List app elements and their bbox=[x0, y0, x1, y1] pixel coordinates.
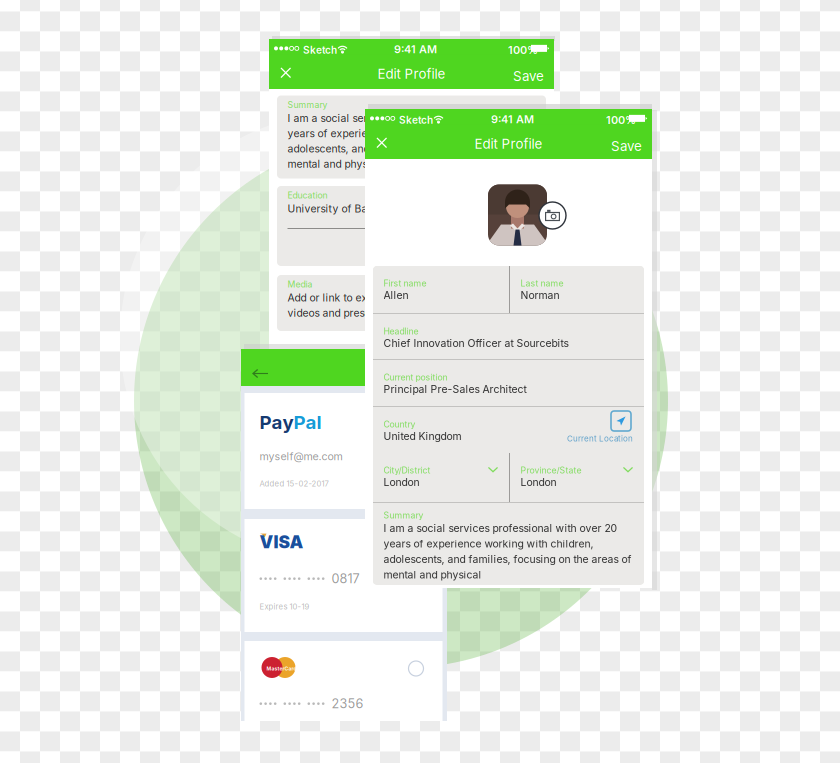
staticText: United Kingdom bbox=[383, 430, 461, 443]
button[interactable]: Save bbox=[504, 61, 554, 87]
staticText: mental and physical bbox=[383, 568, 481, 581]
staticText: Allen bbox=[383, 289, 408, 302]
staticText: 2356 bbox=[331, 696, 363, 711]
staticText: London bbox=[383, 476, 419, 489]
staticText: Education bbox=[287, 190, 327, 200]
staticText: 0817 bbox=[331, 571, 359, 586]
staticText: adolescents, and families, focusing on t… bbox=[383, 553, 631, 566]
staticText: I am a social services professional with… bbox=[383, 522, 617, 535]
staticText: myself@me.com bbox=[259, 450, 342, 463]
staticText: Summary bbox=[287, 99, 327, 110]
button[interactable]: Save bbox=[602, 131, 652, 157]
staticText: Edit Profile bbox=[474, 136, 542, 152]
staticText: videos and presentations bbox=[287, 307, 408, 319]
staticText: Add or link to external documents, bbox=[287, 291, 454, 304]
staticText: Current Location bbox=[567, 434, 633, 443]
staticText: Pal bbox=[293, 411, 321, 434]
staticText: Headline bbox=[383, 326, 418, 336]
staticText: MasterCard bbox=[266, 665, 296, 672]
button[interactable]: MasterCard bbox=[244, 641, 442, 721]
staticText: Current position bbox=[383, 372, 447, 382]
staticText: First name bbox=[383, 278, 426, 288]
staticText: London bbox=[520, 476, 556, 489]
staticText: Sketch bbox=[303, 44, 337, 56]
button[interactable]: VISA bbox=[244, 519, 442, 632]
staticText: Pay bbox=[259, 411, 293, 434]
staticText: Media bbox=[287, 279, 312, 289]
button[interactable]: Back bbox=[241, 361, 279, 385]
staticText: Save bbox=[513, 68, 544, 84]
staticText: Expires 10-19 bbox=[259, 602, 309, 611]
staticText: 100% bbox=[508, 43, 538, 57]
staticText: 100% bbox=[606, 113, 636, 127]
staticText: Country bbox=[383, 419, 415, 429]
button[interactable]: Current Location bbox=[567, 411, 633, 443]
staticText: Norman bbox=[520, 289, 559, 302]
staticText: years of experience working with childre… bbox=[287, 127, 497, 140]
staticText: 9:41 AM bbox=[394, 43, 437, 56]
button[interactable]: Close bbox=[269, 61, 303, 87]
staticText: I am a social services professional with… bbox=[287, 112, 521, 125]
staticText: University of Bayern bbox=[287, 202, 389, 215]
staticText: 9:41 AM bbox=[491, 113, 534, 126]
staticText: Save bbox=[611, 138, 642, 154]
staticText: Edit Profile bbox=[377, 66, 445, 82]
staticText: City/District bbox=[383, 465, 430, 475]
staticText: Chief Innovation Officer at Sourcebits bbox=[383, 337, 568, 350]
staticText: mental and physical bbox=[287, 158, 385, 170]
staticText: VISA bbox=[259, 531, 303, 552]
staticText: Principal Pre-Sales Architect bbox=[383, 383, 526, 396]
button[interactable]: Pay bbox=[244, 393, 442, 509]
staticText: Province/State bbox=[520, 465, 581, 475]
staticText: years of experience working with childre… bbox=[383, 537, 593, 550]
button[interactable]: Close bbox=[365, 131, 399, 157]
staticText: Sketch bbox=[399, 114, 433, 126]
staticText: Summary bbox=[383, 510, 423, 520]
staticText: adolescents, and families, focusing on t… bbox=[287, 142, 535, 155]
staticText: Last name bbox=[520, 278, 563, 288]
button[interactable]: Change photo bbox=[539, 202, 566, 229]
staticText: Added 15-02-2017 bbox=[259, 479, 328, 488]
